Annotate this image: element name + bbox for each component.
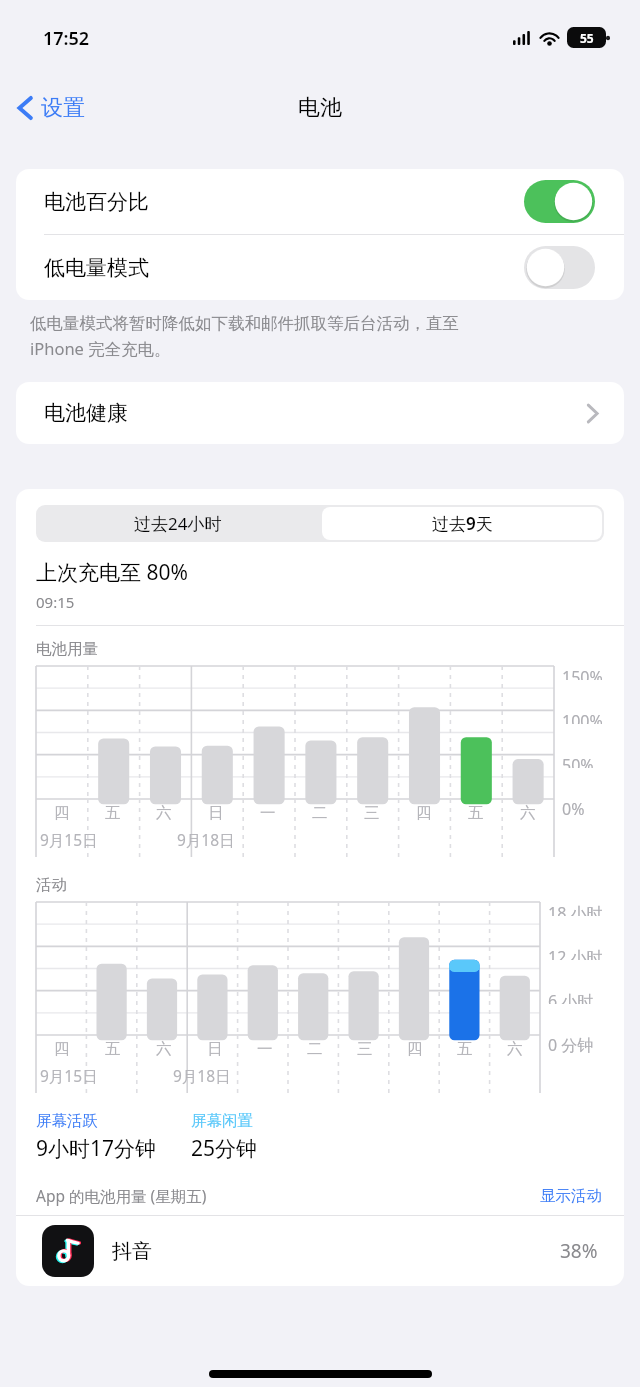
staticText: 屏幕闲置 (191, 1111, 253, 1131)
button[interactable]: 过去24小时 (36, 505, 320, 542)
staticText: 六 (520, 803, 536, 823)
staticText: 五 (457, 1039, 473, 1059)
button[interactable]: 电池健康 (16, 382, 624, 444)
staticText: 38% (560, 1238, 598, 1264)
staticText: 屏幕活跃 (36, 1111, 98, 1131)
staticText: 9小时17分钟 (36, 1134, 157, 1163)
staticText: 六 (156, 803, 172, 823)
staticText: 低电量模式 (44, 255, 149, 281)
staticText: 上次充电至 80% (36, 558, 188, 587)
staticText: 四 (54, 1039, 70, 1059)
staticText: 五 (105, 803, 121, 823)
staticText: 设置 (41, 94, 85, 122)
staticText: 五 (105, 1039, 121, 1059)
staticText: 四 (416, 803, 432, 823)
staticText: 电池健康 (44, 400, 128, 426)
staticText: 三 (364, 803, 380, 823)
staticText: 9月15日 (40, 1065, 98, 1086)
staticText: 四 (54, 803, 70, 823)
staticText: 0% (562, 798, 585, 820)
staticText: App 的电池用量 (星期五) (36, 1185, 207, 1206)
staticText: 12 小时 (548, 946, 603, 960)
staticText: 二 (312, 803, 328, 823)
staticText: 18 小时 (548, 902, 603, 916)
staticText: iPhone 完全充电。 (30, 337, 171, 360)
staticText: 9月15日 (40, 829, 98, 850)
staticText: 二 (307, 1039, 323, 1059)
staticText: 电池用量 (36, 639, 98, 659)
staticText: 活动 (36, 875, 67, 895)
staticText: 9月18日 (177, 829, 235, 850)
staticText: 六 (507, 1039, 523, 1059)
staticText: 过去24小时 (134, 512, 222, 535)
button[interactable]: 电池百分比 (16, 169, 624, 234)
staticText: 17:52 (43, 26, 90, 51)
staticText: 100% (562, 710, 603, 724)
staticText: 150% (562, 666, 603, 680)
staticText: 电池 (298, 94, 342, 122)
button[interactable]: 显示活动 (540, 1186, 602, 1206)
staticText: 低电量模式将暂时降低如下载和邮件抓取等后台活动，直至 (30, 313, 459, 334)
staticText: 六 (156, 1039, 172, 1059)
staticText: 6 小时 (548, 990, 594, 1004)
button[interactable]: 抖音 (16, 1216, 624, 1286)
staticText: 四 (407, 1039, 423, 1059)
staticText: 09:15 (36, 592, 75, 612)
staticText: 五 (468, 803, 484, 823)
staticText: 一 (257, 1039, 273, 1059)
staticText: 抖音 (112, 1239, 152, 1264)
staticText: 电池百分比 (44, 189, 149, 215)
staticText: 25分钟 (191, 1134, 258, 1163)
button[interactable]: 过去9天 (322, 507, 602, 540)
staticText: 一 (260, 803, 276, 823)
staticText: 过去9天 (432, 512, 493, 535)
staticText: 日 (208, 803, 224, 823)
staticText: 9月18日 (173, 1065, 231, 1086)
button[interactable]: 设置 (0, 86, 97, 130)
staticText: 三 (357, 1039, 373, 1059)
staticText: 日 (207, 1039, 223, 1059)
staticText: 0 分钟 (548, 1034, 594, 1056)
button[interactable]: 低电量模式 (16, 235, 624, 300)
staticText: 55 (580, 30, 594, 46)
staticText: 50% (562, 754, 594, 768)
